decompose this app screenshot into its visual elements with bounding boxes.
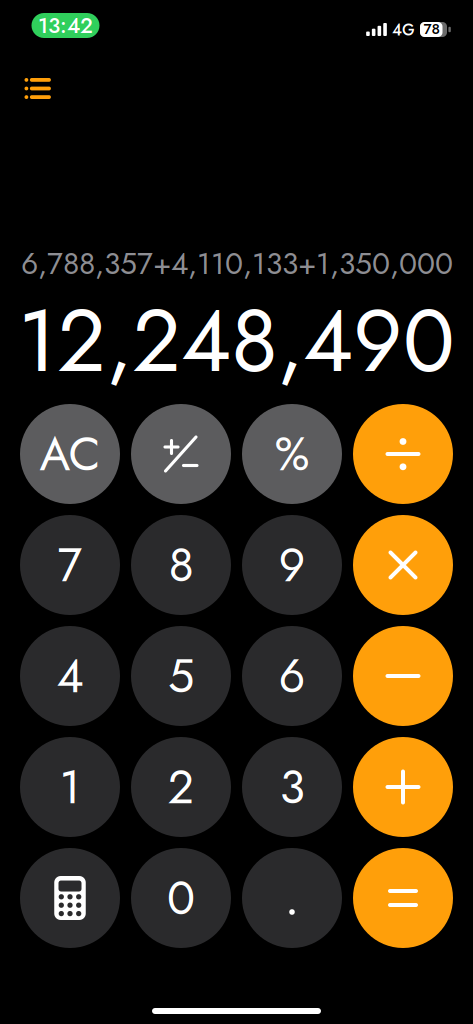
button[interactable]: Equals	[353, 848, 453, 948]
button[interactable]: Divide	[353, 404, 453, 504]
button[interactable]: History	[11, 66, 65, 110]
staticText: 13:42	[38, 10, 93, 41]
button[interactable]: 0	[131, 848, 231, 948]
staticText: 9	[278, 531, 305, 599]
staticText: 2	[167, 753, 194, 821]
button[interactable]: 7	[20, 515, 120, 615]
button[interactable]: %	[242, 404, 342, 504]
staticText: 7	[57, 531, 82, 599]
button[interactable]: 6	[242, 626, 342, 726]
button[interactable]: 9	[242, 515, 342, 615]
button[interactable]: 4	[20, 626, 120, 726]
staticText: 4	[56, 642, 83, 710]
button[interactable]: 1	[20, 737, 120, 837]
button[interactable]: 5	[131, 626, 231, 726]
staticText: 78	[423, 18, 439, 40]
staticText: 5	[168, 642, 194, 710]
staticText: 6	[278, 642, 305, 710]
staticText: 8	[168, 531, 193, 599]
button[interactable]: Multiply	[353, 515, 453, 615]
staticText: 4G	[392, 18, 415, 41]
button[interactable]: 8	[131, 515, 231, 615]
button[interactable]: 3	[242, 737, 342, 837]
button[interactable]: AC	[20, 404, 120, 504]
button[interactable]: Decimal point	[242, 848, 342, 948]
button[interactable]: 2	[131, 737, 231, 837]
staticText: 1	[59, 753, 80, 821]
staticText: AC	[39, 420, 100, 488]
staticText: 12,248,490	[18, 279, 455, 403]
button[interactable]: Subtract	[353, 626, 453, 726]
staticText: 0	[167, 864, 195, 932]
staticText: 6,788,357+4,110,133+1,350,000	[21, 242, 453, 285]
button[interactable]: Add	[353, 737, 453, 837]
staticText: 3	[279, 753, 304, 821]
button[interactable]: Positive Negative	[131, 404, 231, 504]
staticText: %	[274, 420, 309, 488]
button[interactable]: Calculator	[20, 848, 120, 948]
